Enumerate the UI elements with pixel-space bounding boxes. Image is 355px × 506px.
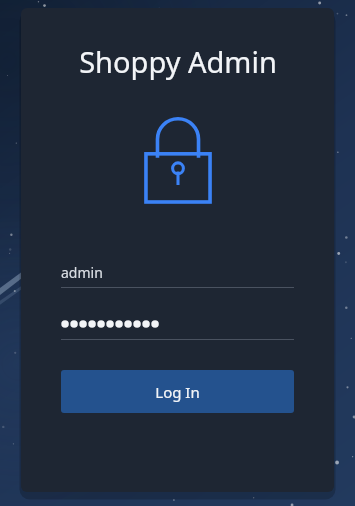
staticText: Shoppy Admin xyxy=(79,42,277,81)
button[interactable] xyxy=(61,309,294,340)
staticText: admin xyxy=(61,263,103,282)
staticText: Log In xyxy=(155,382,200,402)
button[interactable]: admin xyxy=(61,257,294,288)
button[interactable]: Log In xyxy=(61,370,294,413)
other: Secure login xyxy=(142,119,214,205)
